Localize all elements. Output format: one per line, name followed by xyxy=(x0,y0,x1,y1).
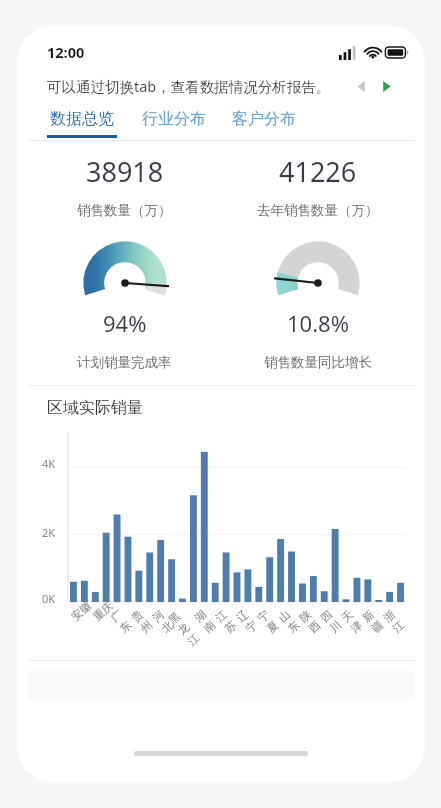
button[interactable]: 数据总览 xyxy=(47,103,117,138)
staticText: 去年销售数量（万） xyxy=(257,202,379,219)
staticText: 河北 xyxy=(149,601,184,635)
button[interactable]: 客户分布 xyxy=(231,103,297,138)
staticText: 2K xyxy=(42,525,56,540)
staticText: 可以通过切换tab，查看数据情况分析报告。 xyxy=(47,76,349,96)
staticText: 江苏 xyxy=(212,601,247,635)
staticText: 41226 xyxy=(279,153,357,190)
staticText: 行业分布 xyxy=(142,109,206,129)
staticText: 10.8% xyxy=(287,308,349,338)
staticText: 数据总览 xyxy=(50,109,114,129)
staticText: 湖南 xyxy=(191,601,226,635)
staticText: 销售数量同比增长 xyxy=(264,354,372,371)
staticText: 4K xyxy=(42,456,56,471)
button[interactable]: 行业分布 xyxy=(141,103,207,138)
button[interactable]: 38918 xyxy=(28,153,221,219)
staticText: 12:00 xyxy=(47,42,85,62)
staticText: 宁夏 xyxy=(254,601,289,635)
staticText: 新疆 xyxy=(359,601,394,635)
button[interactable]: 41226 xyxy=(221,153,414,219)
button[interactable]: 10.8% xyxy=(221,227,414,371)
staticText: 陕西 xyxy=(296,601,331,635)
staticText: 区域实际销量 xyxy=(47,398,143,418)
staticText: 重庆 xyxy=(90,598,116,623)
staticText: 销售数量（万） xyxy=(77,202,172,219)
staticText: 安徽 xyxy=(68,598,94,623)
staticText: 天津 xyxy=(338,601,373,635)
staticText: 浙江 xyxy=(380,601,414,635)
staticText: 山东 xyxy=(275,601,310,635)
button[interactable]: Previous xyxy=(349,74,374,99)
staticText: 客户分布 xyxy=(232,109,296,129)
staticText: 黑龙江 xyxy=(165,602,210,648)
staticText: 辽宁 xyxy=(233,601,268,635)
staticText: 计划销量完成率 xyxy=(77,354,172,371)
button[interactable]: 94% xyxy=(28,227,221,371)
staticText: 94% xyxy=(103,308,147,338)
staticText: 广东 xyxy=(107,601,142,635)
staticText: 贵州 xyxy=(128,601,163,635)
button[interactable]: Next xyxy=(374,74,399,99)
staticText: 0K xyxy=(42,591,56,604)
staticText: 四川 xyxy=(317,601,352,635)
staticText: 38918 xyxy=(86,153,164,190)
